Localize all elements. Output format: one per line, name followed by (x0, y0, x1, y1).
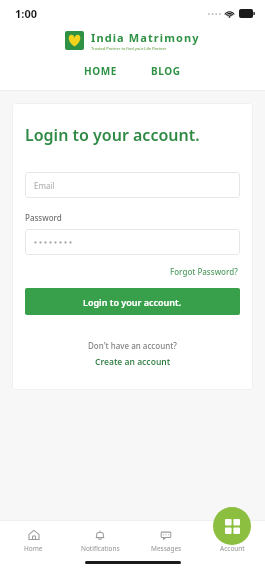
other: Messages (160, 529, 172, 541)
button[interactable]: Email (25, 172, 240, 198)
staticText: Account (220, 544, 245, 553)
button[interactable]: BLOG (141, 61, 191, 81)
staticText: Trusted Partner to find your Life Partne… (91, 46, 167, 51)
staticText: Login to your account. (25, 124, 200, 146)
other: Notifications (94, 529, 106, 541)
staticText: Notifications (81, 544, 120, 553)
other: Home (28, 529, 40, 541)
staticText: Create an account (95, 356, 171, 368)
button[interactable]: Home (0, 526, 67, 556)
staticText: 1:00 (15, 6, 37, 21)
button[interactable]: Forgot Password? (168, 264, 240, 279)
staticText: Don't have an account? (88, 340, 177, 351)
button[interactable] (25, 229, 240, 255)
staticText: India Matrimony (91, 30, 200, 45)
staticText: BLOG (151, 64, 181, 78)
button[interactable]: HOME (74, 61, 127, 81)
button[interactable]: Login to your account. (25, 288, 240, 315)
staticText: Login to your account. (83, 296, 182, 308)
staticText: Forgot Password? (170, 266, 238, 277)
button[interactable]: Notifications (67, 526, 133, 556)
staticText: Password (25, 212, 62, 223)
button[interactable]: Messages (133, 526, 199, 556)
other: Account (226, 529, 238, 541)
button[interactable]: Create an account (92, 355, 174, 369)
button[interactable]: Menu (213, 507, 251, 545)
staticText: Email (34, 180, 55, 191)
staticText: Home (24, 544, 43, 553)
staticText: Messages (151, 544, 182, 553)
button[interactable]: Account (199, 526, 265, 556)
staticText: HOME (84, 64, 117, 78)
